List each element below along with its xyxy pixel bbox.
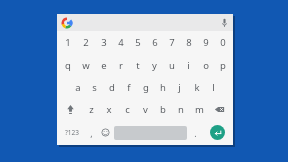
button[interactable]: s <box>86 76 103 98</box>
other: Google search <box>62 18 72 28</box>
staticText: b <box>160 103 166 116</box>
button[interactable]: Emoji <box>98 120 113 145</box>
staticText: z <box>89 103 94 116</box>
button[interactable]: v <box>136 98 154 120</box>
button[interactable]: x <box>100 98 118 120</box>
button[interactable]: 8 <box>180 31 197 54</box>
button[interactable]: l <box>205 76 222 98</box>
staticText: y <box>152 59 157 72</box>
staticText: o <box>203 59 209 72</box>
button[interactable]: f <box>120 76 137 98</box>
button[interactable]: 5 <box>129 31 146 54</box>
button[interactable]: h <box>154 76 171 98</box>
button[interactable]: d <box>103 76 120 98</box>
button[interactable]: Shift <box>59 98 82 120</box>
button[interactable]: u <box>163 54 180 76</box>
button[interactable]: k <box>188 76 205 98</box>
staticText: q <box>65 59 71 72</box>
button[interactable]: a <box>69 76 86 98</box>
staticText: m <box>195 103 204 116</box>
staticText: l <box>212 81 215 94</box>
button[interactable]: c <box>118 98 136 120</box>
staticText: g <box>143 81 149 94</box>
button[interactable]: 0 <box>214 31 231 54</box>
staticText: s <box>92 81 97 94</box>
staticText: 2 <box>83 36 89 49</box>
staticText: 7 <box>169 36 175 49</box>
button[interactable]: 1 <box>59 31 77 54</box>
button[interactable]: j <box>171 76 188 98</box>
staticText: 3 <box>101 36 107 49</box>
button[interactable]: e <box>95 54 112 76</box>
button[interactable]: 3 <box>95 31 112 54</box>
button[interactable]: m <box>190 98 208 120</box>
button[interactable]: w <box>77 54 95 76</box>
staticText: 6 <box>152 36 158 49</box>
button[interactable]: 6 <box>146 31 163 54</box>
staticText: p <box>220 59 226 72</box>
staticText: 5 <box>135 36 141 49</box>
button[interactable]: n <box>172 98 190 120</box>
staticText: e <box>101 59 107 72</box>
staticText: 1 <box>65 36 71 49</box>
button[interactable]: , <box>84 120 98 145</box>
button[interactable]: z <box>82 98 100 120</box>
staticText: w <box>82 59 90 72</box>
button[interactable]: g <box>137 76 154 98</box>
button[interactable]: 7 <box>163 31 180 54</box>
staticText: u <box>169 59 175 72</box>
button[interactable]: ?123 <box>59 120 84 145</box>
button[interactable]: y <box>146 54 163 76</box>
staticText: i <box>187 59 190 72</box>
staticText: c <box>125 103 130 116</box>
staticText: a <box>75 81 81 94</box>
button[interactable]: b <box>154 98 172 120</box>
button[interactable]: o <box>197 54 214 76</box>
staticText: k <box>194 81 200 94</box>
button[interactable]: q <box>59 54 77 76</box>
button[interactable]: p <box>214 54 231 76</box>
button[interactable]: t <box>129 54 146 76</box>
button[interactable]: Enter <box>210 125 225 140</box>
staticText: t <box>136 59 140 72</box>
staticText: r <box>119 59 123 72</box>
staticText: 0 <box>220 36 226 49</box>
button[interactable]: i <box>180 54 197 76</box>
button[interactable]: Google search <box>57 14 233 31</box>
other: Voice input <box>221 17 228 28</box>
button[interactable]: r <box>112 54 129 76</box>
staticText: f <box>127 81 131 94</box>
staticText: x <box>106 103 112 116</box>
staticText: v <box>143 103 148 116</box>
staticText: j <box>178 81 181 94</box>
staticText: . <box>194 127 197 139</box>
staticText: d <box>109 81 115 94</box>
staticText: ?123 <box>65 128 79 137</box>
button[interactable]: . <box>188 120 203 145</box>
staticText: 8 <box>186 36 192 49</box>
button[interactable]: 4 <box>112 31 129 54</box>
staticText: , <box>90 127 93 139</box>
staticText: 9 <box>203 36 209 49</box>
staticText: h <box>160 81 166 94</box>
button[interactable]: 9 <box>197 31 214 54</box>
button[interactable]: Backspace <box>208 98 231 120</box>
staticText: 4 <box>118 36 124 49</box>
button[interactable]: 2 <box>77 31 95 54</box>
staticText: n <box>178 103 184 116</box>
